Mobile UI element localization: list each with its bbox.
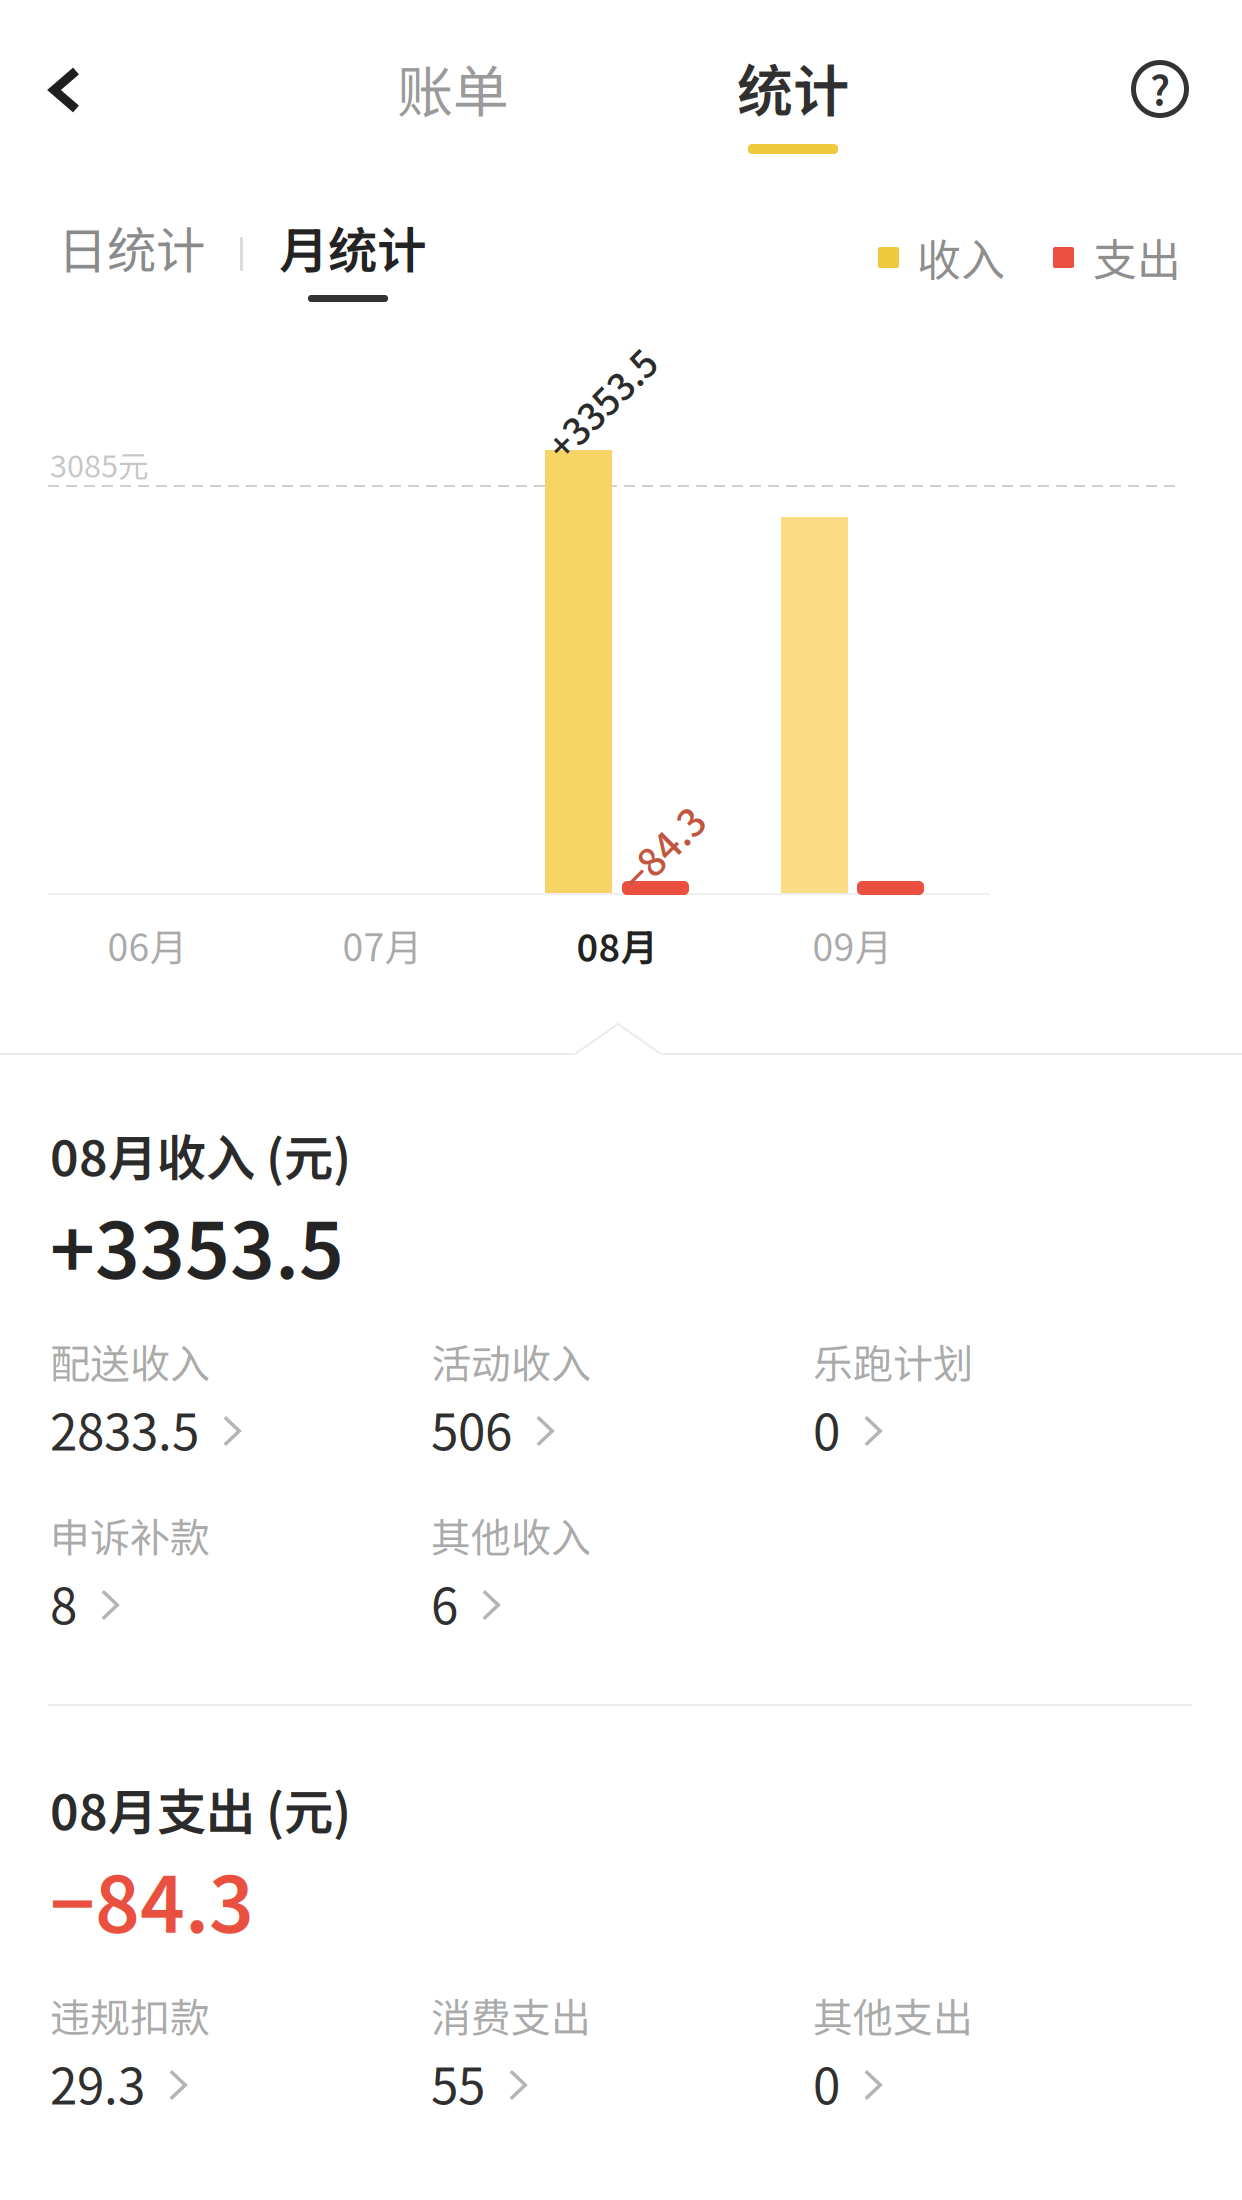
staticText: 506 [431,1393,512,1465]
button[interactable]: 账单 [363,38,543,138]
button[interactable]: 06月 [52,909,242,981]
button[interactable]: 日统计 [58,204,218,290]
staticText: 06月 [107,918,186,972]
staticText: 乐跑计划 [813,1332,973,1390]
staticText: +3353.5 [50,1189,344,1301]
staticText: 0 [813,1393,840,1465]
staticText: 消费支出 [431,1986,591,2044]
staticText: +3353.5 [532,376,669,430]
staticText: 配送收入 [50,1332,210,1390]
staticText: 其他支出 [813,1986,973,2044]
staticText: 2833.5 [50,1393,199,1465]
staticText: 日统计 [58,211,205,283]
staticText: 08月支出 (元) [50,1773,351,1844]
button[interactable]: Back [15,40,115,140]
staticText: 08月 [576,918,657,972]
staticText: 6 [431,1567,458,1639]
staticText: 违规扣款 [50,1986,210,2044]
button[interactable]: 09月 [757,909,947,981]
staticText: 支出 [1093,225,1181,289]
staticText: 09月 [812,918,891,972]
button[interactable]: 其他收入 [431,1499,761,1639]
staticText: 统计 [737,46,849,128]
staticText: 申诉补款 [50,1506,210,1564]
staticText: 3085元 [50,442,149,486]
button[interactable]: 申诉补款 [50,1499,380,1639]
staticText: 0 [813,2047,840,2119]
button[interactable]: 07月 [287,909,477,981]
staticText: 月统计 [279,211,426,283]
button[interactable]: 其他支出 [813,1979,1143,2119]
staticText: 55 [431,2047,485,2119]
button[interactable]: 活动收入 [431,1325,761,1465]
staticText: 账单 [397,47,509,129]
staticText: −84.3 [612,820,712,876]
button[interactable]: 消费支出 [431,1979,761,2119]
button[interactable]: 乐跑计划 [813,1325,1143,1465]
button[interactable]: 月统计 [279,201,439,309]
button[interactable]: 统计 [703,51,883,166]
staticText: 08月收入 (元) [50,1119,351,1190]
staticText: −84.3 [50,1843,254,1955]
staticText: 收入 [917,225,1005,289]
button[interactable]: 08月 [522,909,712,981]
button[interactable]: 违规扣款 [50,1979,380,2119]
staticText: 8 [50,1567,77,1639]
staticText: ? [1150,59,1170,117]
button[interactable]: 配送收入 [50,1325,380,1465]
staticText: 29.3 [50,2047,145,2119]
staticText: 07月 [342,918,421,972]
staticText: 活动收入 [431,1332,591,1390]
button[interactable]: Help [1110,39,1210,139]
staticText: 其他收入 [431,1506,591,1564]
